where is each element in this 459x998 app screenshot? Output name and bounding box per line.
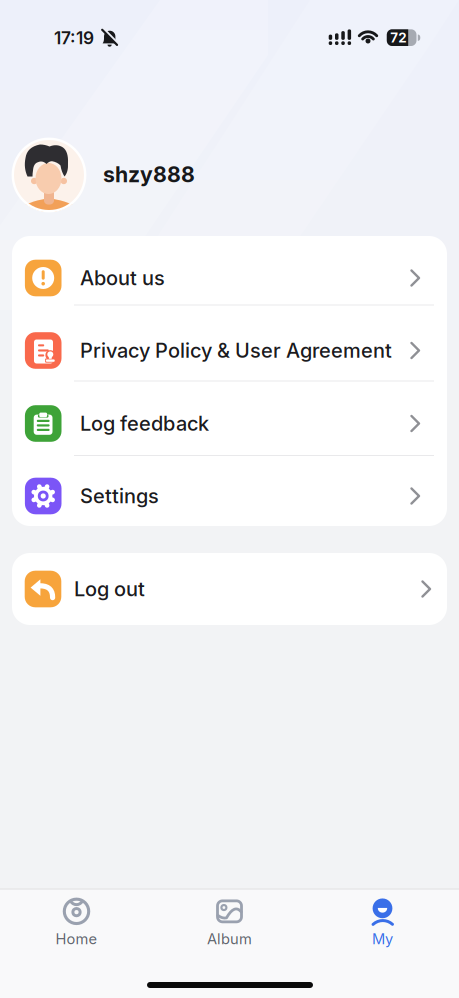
- button[interactable]: My: [312, 891, 452, 953]
- staticText: 72: [390, 30, 406, 45]
- staticText: Settings: [80, 484, 159, 508]
- staticText: Privacy Policy & User Agreement: [80, 339, 392, 362]
- staticText: Album: [207, 930, 252, 948]
- button[interactable]: Privacy Policy & User Agreement: [12, 317, 447, 383]
- staticText: Home: [55, 930, 97, 948]
- staticText: My: [372, 930, 393, 948]
- staticText: About us: [80, 266, 165, 290]
- staticText: Log out: [74, 577, 145, 601]
- button[interactable]: Log out: [12, 556, 447, 622]
- button[interactable]: Album: [159, 891, 299, 953]
- button[interactable]: About us: [12, 245, 447, 311]
- staticText: shzy888: [103, 162, 195, 187]
- button[interactable]: Settings: [12, 463, 447, 529]
- button[interactable]: Home: [6, 891, 146, 953]
- staticText: 17:19: [54, 28, 94, 48]
- button[interactable]: Log feedback: [12, 390, 447, 456]
- staticText: Log feedback: [80, 412, 209, 435]
